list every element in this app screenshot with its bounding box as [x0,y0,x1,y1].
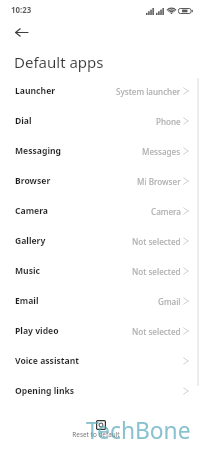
staticText: Default apps [14,52,104,72]
button[interactable]: Back [10,22,32,43]
button[interactable]: Gallery [0,226,202,256]
button[interactable]: Messaging [0,136,202,166]
staticText: Not selected [132,326,181,337]
staticText: TechBone [86,415,191,446]
staticText: Launcher [15,85,56,97]
staticText: 10:23 [11,5,32,16]
staticText: Voice assistant [15,355,80,367]
button[interactable]: Browser [0,166,202,196]
staticText: Messaging [15,145,62,157]
staticText: Opening links [15,385,75,397]
button[interactable]: Reset to default [70,417,122,440]
button[interactable]: Launcher [0,76,202,106]
staticText: Mi Browser [137,176,181,187]
staticText: Play video [15,325,59,337]
staticText: System launcher [116,86,181,97]
staticText: Browser [15,175,51,187]
button[interactable]: Music [0,256,202,286]
button[interactable]: Play video [0,316,202,346]
staticText: Phone [156,116,181,127]
staticText: Email [15,295,39,307]
button[interactable]: Dial [0,106,202,136]
staticText: Dial [15,115,32,127]
button[interactable]: Opening links [0,376,202,406]
staticText: Reset to default [72,430,120,439]
button[interactable]: Camera [0,196,202,226]
staticText: Music [15,265,41,277]
staticText: Camera [15,205,48,217]
button[interactable]: Email [0,286,202,316]
staticText: Not selected [132,236,181,247]
staticText: Gallery [15,235,46,247]
staticText: Gmail [158,296,181,307]
staticText: Not selected [132,266,181,277]
staticText: Camera [151,206,181,217]
button[interactable]: Voice assistant [0,346,202,376]
staticText: Messages [142,146,181,157]
